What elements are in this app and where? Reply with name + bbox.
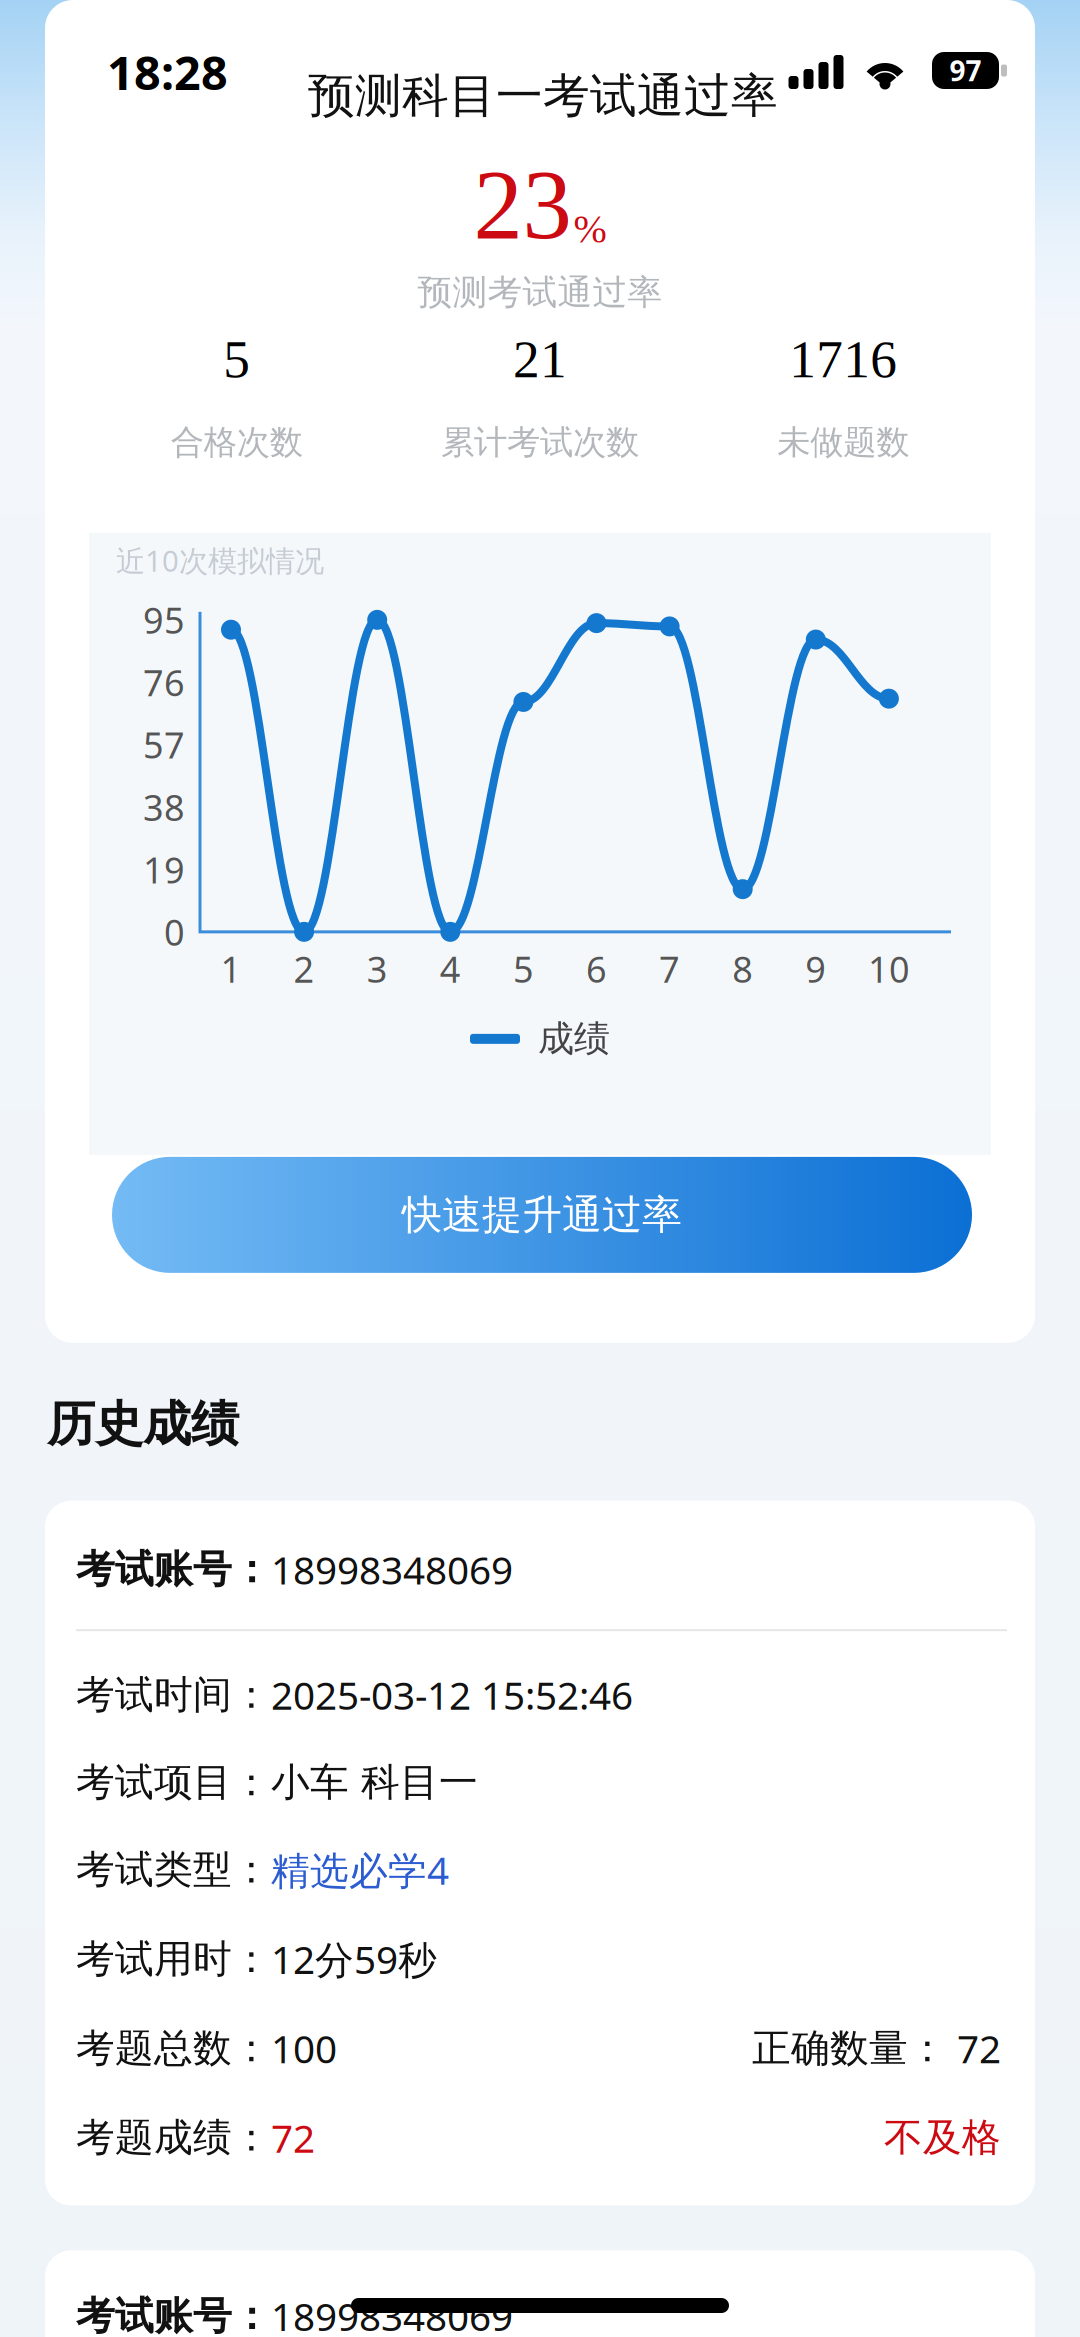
staticText: 考题成绩： (76, 2114, 271, 2161)
staticText: 97 (949, 52, 981, 89)
staticText: 2025-03-12 15:52:46 (271, 1669, 633, 1720)
staticText: 23 (473, 150, 571, 259)
staticText: 100 (271, 2023, 337, 2074)
staticText: 近10次模拟情况 (116, 541, 324, 580)
staticText: 1 (220, 945, 241, 993)
staticText: 考试时间： (76, 1671, 271, 1719)
staticText: 正确数量： (752, 2025, 947, 2072)
staticText: 9 (805, 945, 826, 993)
staticText: 快速提升通过率 (402, 1190, 682, 1239)
staticText: 18998348069 (271, 1544, 513, 1595)
staticText: 考试用时： (76, 1935, 271, 1983)
staticText: % (573, 207, 606, 251)
button[interactable]: 快速提升通过率 (112, 1157, 972, 1273)
staticText: 不及格 (884, 2114, 1001, 2161)
staticText: 4 (440, 945, 461, 993)
staticText: 成绩 (538, 1017, 610, 1061)
staticText: 72 (947, 2023, 1001, 2074)
staticText: 考试类型： (76, 1846, 271, 1893)
staticText: 8 (732, 945, 753, 993)
staticText: 精选必学4 (271, 1844, 449, 1895)
staticText: 未做题数 (777, 422, 909, 463)
staticText: 小车 科目一 (271, 1758, 478, 1806)
button[interactable]: 考试账号： (45, 2250, 1035, 2337)
staticText: 57 (143, 721, 185, 768)
staticText: 预测考试通过率 (417, 271, 662, 314)
staticText: 7 (659, 945, 680, 993)
staticText: 76 (143, 658, 185, 706)
staticText: 18:28 (107, 41, 228, 103)
staticText: 21 (513, 330, 567, 389)
staticText: 累计考试次数 (441, 422, 639, 463)
staticText: 38 (143, 783, 185, 831)
staticText: 12分59秒 (271, 1933, 437, 1985)
staticText: 考试账号： (76, 1546, 271, 1593)
staticText: 19 (143, 845, 185, 893)
staticText: 5 (223, 330, 250, 389)
staticText: 考试项目： (76, 1758, 271, 1806)
staticText: 合格次数 (171, 422, 303, 463)
staticText: 3 (367, 945, 388, 993)
button[interactable]: 考试账号： (45, 1501, 1035, 2205)
staticText: 2 (294, 945, 315, 993)
staticText: 72 (271, 2112, 315, 2163)
staticText: 5 (513, 945, 534, 993)
staticText: 10 (868, 945, 910, 993)
staticText: 0 (164, 908, 185, 956)
staticText: 考试账号： (76, 2292, 271, 2337)
staticText: 95 (143, 596, 185, 644)
staticText: 考题总数： (76, 2025, 271, 2072)
staticText: 预测科目一考试通过率 (308, 67, 778, 125)
staticText: 18998348069 (271, 2290, 513, 2337)
staticText: 历史成绩 (47, 1395, 239, 1454)
staticText: 1716 (789, 330, 897, 389)
staticText: 6 (586, 945, 607, 993)
